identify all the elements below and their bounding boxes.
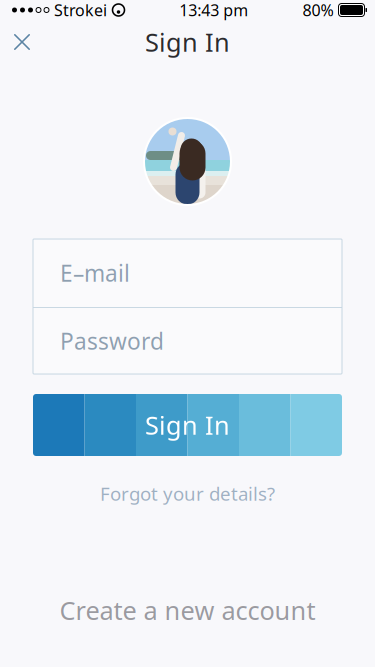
button[interactable]: Password [33, 308, 342, 374]
staticText: Create a new account [59, 593, 315, 627]
button[interactable]: Sign In [33, 394, 342, 456]
staticText: 13:43 pm [179, 0, 248, 21]
button[interactable]: Create a new account [43, 583, 331, 637]
staticText: Sign In [145, 408, 230, 442]
staticText: Strokei [54, 0, 107, 21]
button[interactable]: Forgot your details? [88, 475, 287, 512]
staticText: Password [60, 326, 164, 356]
staticText: 80% [302, 0, 333, 21]
staticText: Forgot your details? [100, 481, 275, 506]
button[interactable]: E–mail [33, 239, 342, 307]
staticText: E–mail [60, 258, 130, 288]
staticText: Sign In [145, 25, 230, 59]
button[interactable]: Close [0, 20, 44, 64]
